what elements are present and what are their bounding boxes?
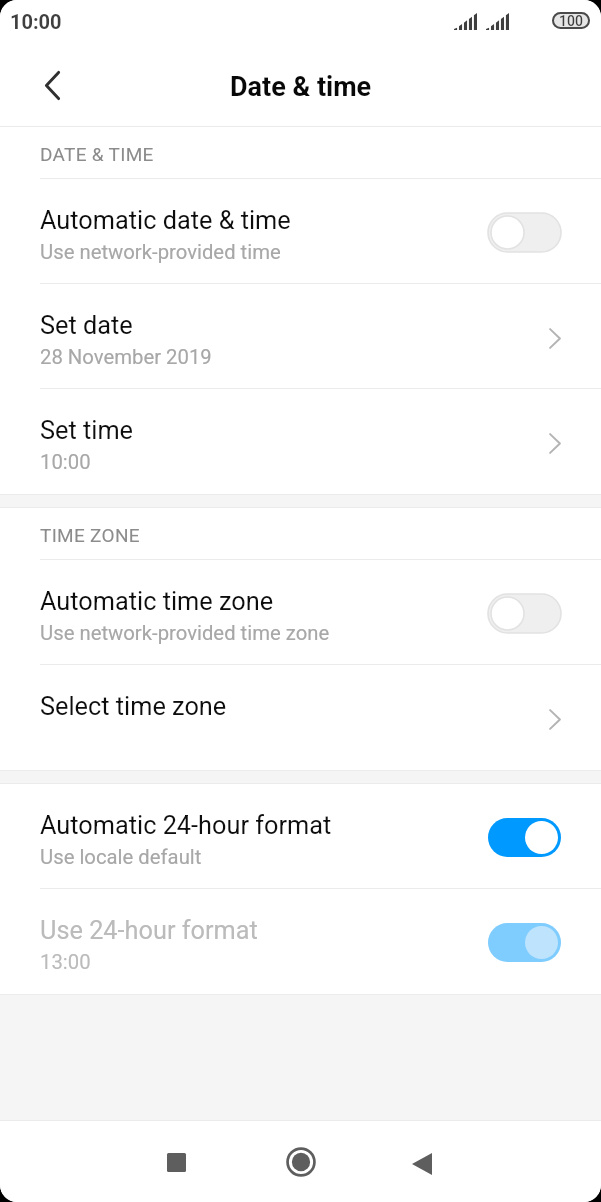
- staticText: Use network-provided time: [40, 240, 281, 264]
- button[interactable]: Back: [382, 1122, 462, 1202]
- button[interactable]: Toggle Automatic date & time: [488, 213, 561, 252]
- button[interactable]: Set date: [0, 284, 601, 389]
- button[interactable]: Select time zone: [0, 665, 601, 770]
- button[interactable]: Set time: [0, 389, 601, 494]
- button[interactable]: Use 24-hour format: [0, 889, 601, 994]
- staticText: Set time: [40, 416, 134, 446]
- button[interactable]: Recents: [136, 1122, 216, 1202]
- button[interactable]: Toggle Automatic 24-hour format: [488, 818, 561, 857]
- staticText: Automatic date & time: [40, 206, 291, 236]
- button[interactable]: Back: [24, 57, 80, 113]
- staticText: TIME ZONE: [40, 524, 140, 546]
- staticText: 13:00: [40, 950, 91, 974]
- staticText: Use 24-hour format: [40, 916, 258, 946]
- button[interactable]: Toggle Use 24-hour format: [488, 923, 561, 962]
- staticText: 100: [559, 13, 583, 29]
- button[interactable]: Toggle Automatic time zone: [488, 594, 561, 633]
- staticText: 10:00: [40, 450, 91, 474]
- button[interactable]: Automatic time zone: [0, 560, 601, 665]
- staticText: Use network-provided time zone: [40, 621, 330, 645]
- staticText: Automatic time zone: [40, 587, 274, 617]
- staticText: 28 November 2019: [40, 345, 212, 369]
- staticText: DATE & TIME: [40, 143, 154, 165]
- staticText: Select time zone: [40, 692, 227, 722]
- button[interactable]: Automatic date & time: [0, 179, 601, 284]
- staticText: Automatic 24-hour format: [40, 811, 332, 841]
- staticText: 10:00: [10, 10, 62, 33]
- staticText: Set date: [40, 311, 133, 341]
- button[interactable]: Home: [261, 1122, 341, 1202]
- staticText: Use locale default: [40, 845, 202, 869]
- button[interactable]: Automatic 24-hour format: [0, 784, 601, 889]
- staticText: Date & time: [230, 71, 372, 103]
